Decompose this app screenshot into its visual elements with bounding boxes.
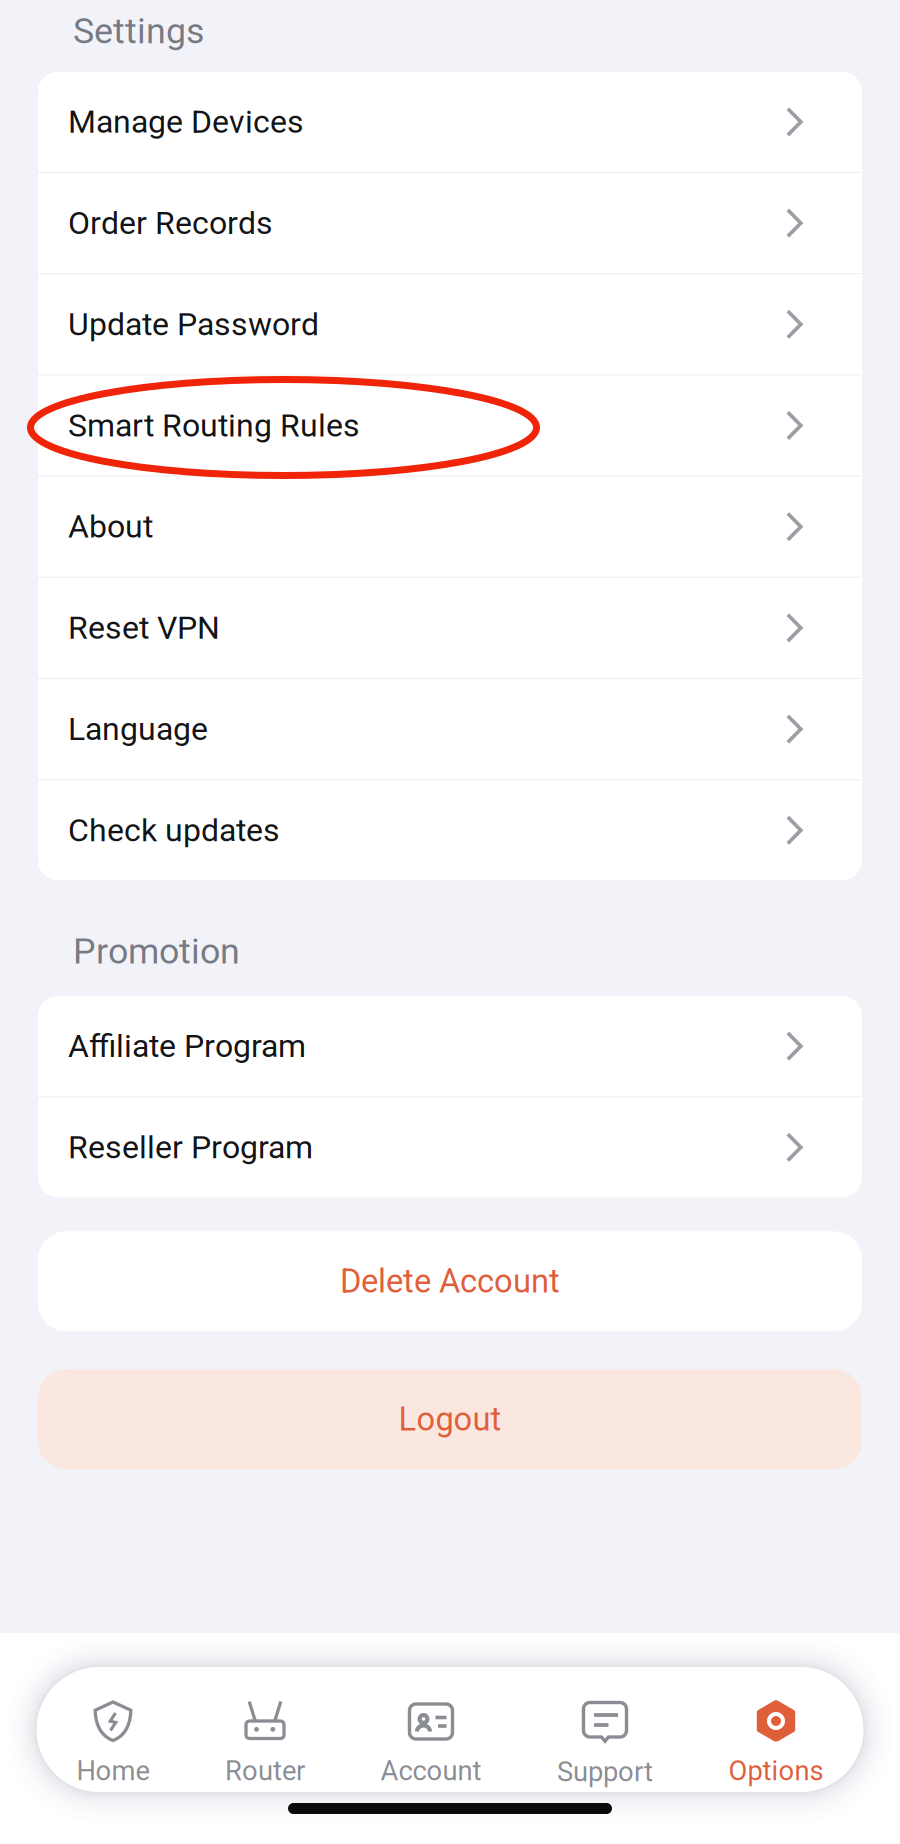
button[interactable]: Router: [225, 1699, 305, 1787]
staticText: Order Records: [68, 204, 273, 242]
button[interactable]: Order Records: [38, 173, 862, 273]
button[interactable]: Smart Routing Rules: [38, 375, 862, 475]
button[interactable]: Reseller Program: [38, 1097, 862, 1197]
button[interactable]: Manage Devices: [38, 72, 862, 172]
staticText: Support: [557, 1756, 653, 1788]
button[interactable]: Account: [380, 1699, 481, 1787]
staticText: Affiliate Program: [68, 1027, 306, 1065]
button[interactable]: Update Password: [38, 274, 862, 374]
button[interactable]: Home: [76, 1699, 149, 1787]
staticText: Options: [728, 1755, 823, 1787]
staticText: Update Password: [68, 305, 319, 343]
staticText: Promotion: [73, 930, 240, 972]
staticText: Router: [225, 1755, 305, 1787]
button[interactable]: Reset VPN: [38, 578, 862, 678]
button[interactable]: About: [38, 477, 862, 577]
staticText: Reset VPN: [68, 609, 220, 647]
button[interactable]: Support: [557, 1698, 653, 1788]
button[interactable]: Options: [728, 1699, 823, 1787]
button[interactable]: Delete Account: [38, 1231, 862, 1331]
staticText: Smart Routing Rules: [68, 407, 360, 444]
button[interactable]: Logout: [38, 1369, 862, 1469]
staticText: Delete Account: [340, 1262, 560, 1300]
staticText: Home: [76, 1755, 149, 1787]
button[interactable]: Language: [38, 679, 862, 779]
staticText: Language: [68, 710, 208, 748]
staticText: Settings: [73, 10, 204, 52]
staticText: Manage Devices: [68, 103, 304, 141]
staticText: Reseller Program: [68, 1129, 313, 1166]
staticText: Logout: [398, 1400, 501, 1438]
staticText: Check updates: [68, 811, 280, 849]
staticText: About: [68, 508, 153, 545]
button[interactable]: Check updates: [38, 780, 862, 880]
button[interactable]: Affiliate Program: [38, 996, 862, 1096]
staticText: Account: [380, 1755, 481, 1787]
